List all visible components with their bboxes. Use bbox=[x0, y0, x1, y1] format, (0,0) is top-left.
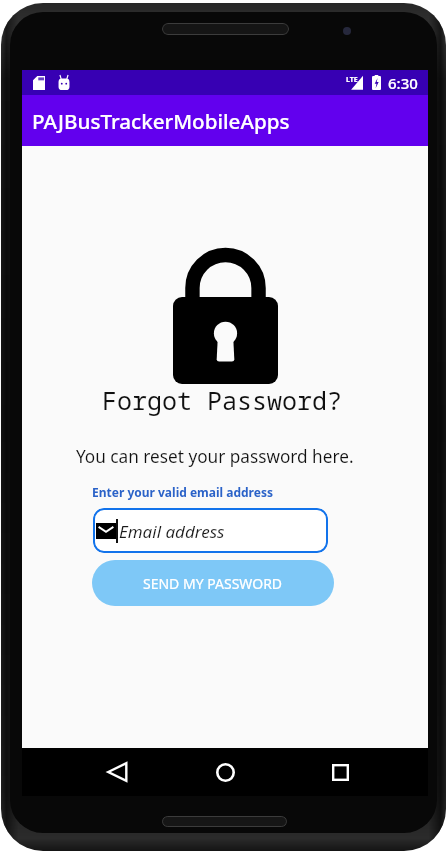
staticText: SEND MY PASSWORD bbox=[143, 574, 283, 593]
staticText: LTE bbox=[346, 75, 358, 85]
staticText: Email address bbox=[119, 520, 225, 543]
button[interactable]: Back bbox=[94, 749, 140, 795]
staticText: Enter your valid email address bbox=[92, 484, 273, 500]
button[interactable]: Recent apps bbox=[317, 749, 363, 795]
button[interactable]: Home bbox=[202, 749, 248, 795]
button[interactable]: SEND MY PASSWORD bbox=[92, 560, 334, 606]
staticText: Forgot Password? bbox=[102, 383, 343, 417]
staticText: PAJBusTrackerMobileApps bbox=[32, 107, 290, 135]
staticText: 6:30 bbox=[388, 73, 418, 93]
staticText: You can reset your password here. bbox=[76, 445, 354, 468]
button[interactable]: Email address bbox=[93, 508, 328, 553]
